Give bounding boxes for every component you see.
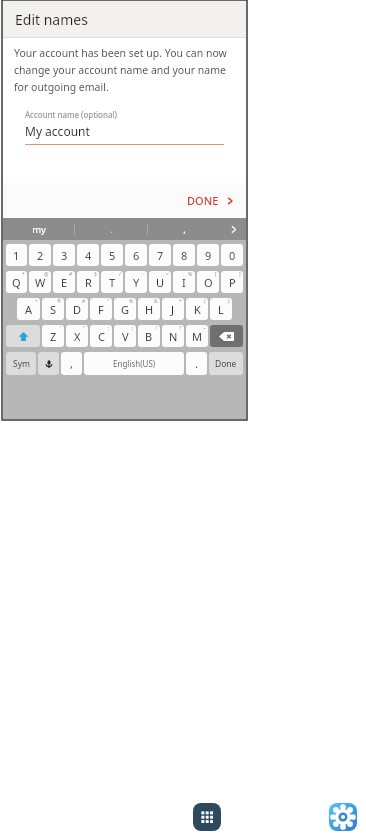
button[interactable]: ! xyxy=(138,325,160,347)
staticText: % xyxy=(129,298,134,305)
button[interactable]: 1 xyxy=(6,244,27,266)
button[interactable]: ? xyxy=(162,325,184,347)
button[interactable]: DONE xyxy=(175,187,246,214)
button[interactable]: " xyxy=(90,298,112,320)
staticText: ? xyxy=(179,325,182,332)
staticText: * xyxy=(22,271,25,278)
staticText: # xyxy=(69,271,73,278)
staticText: S xyxy=(50,302,57,317)
button[interactable]: ® xyxy=(42,298,64,320)
staticText: K xyxy=(194,302,201,317)
staticText: ! xyxy=(156,325,158,332)
staticText: , xyxy=(70,356,73,371)
button[interactable]: 8 xyxy=(173,244,195,266)
button[interactable]: 2 xyxy=(29,244,51,266)
button[interactable]: , xyxy=(61,352,82,375)
staticText: & xyxy=(154,298,158,305)
button[interactable]: my xyxy=(3,218,74,240)
staticText: - xyxy=(143,271,145,278)
staticText: B xyxy=(145,329,153,344)
button[interactable]: / xyxy=(101,271,123,293)
staticText: P xyxy=(229,275,236,290)
button[interactable]: 0 xyxy=(221,244,243,266)
staticText: My account xyxy=(25,123,90,139)
staticText: 6 xyxy=(133,248,140,263)
button[interactable]: - xyxy=(125,271,147,293)
staticText: ] xyxy=(239,271,241,278)
button[interactable]: * xyxy=(6,271,27,293)
button[interactable]: $ xyxy=(77,271,99,293)
button[interactable]: * xyxy=(162,298,184,320)
button[interactable]: [ xyxy=(197,271,219,293)
staticText: 1 xyxy=(13,248,20,263)
button[interactable]: @ xyxy=(29,271,51,293)
button[interactable]: ) xyxy=(210,298,232,320)
staticText: G xyxy=(121,302,130,317)
button[interactable]: = xyxy=(149,271,171,293)
staticText: + xyxy=(35,298,38,305)
button[interactable]: 5 xyxy=(101,244,123,266)
staticText: " xyxy=(83,325,86,332)
staticText: ; xyxy=(132,325,134,332)
button[interactable]: ( xyxy=(186,298,208,320)
button[interactable]: % xyxy=(173,271,195,293)
button[interactable]: " xyxy=(66,325,88,347)
button[interactable]: , xyxy=(148,218,220,240)
button[interactable]: % xyxy=(114,298,136,320)
staticText: Q xyxy=(12,275,21,290)
staticText: DONE xyxy=(187,193,219,208)
button[interactable]: Apps xyxy=(193,803,221,831)
staticText: N xyxy=(169,329,178,344)
staticText: my xyxy=(32,223,46,236)
staticText: T xyxy=(109,275,116,290)
staticText: W xyxy=(35,275,46,290)
button[interactable]: Backspace xyxy=(210,325,243,347)
button[interactable]: ] xyxy=(221,271,243,293)
button[interactable]: Symbols xyxy=(6,352,36,375)
staticText: . xyxy=(195,356,198,371)
staticText: ® xyxy=(57,298,62,305)
button[interactable]: ~ xyxy=(186,325,208,347)
staticText: : xyxy=(108,325,110,332)
staticText: O xyxy=(204,275,213,290)
staticText: 5 xyxy=(109,248,116,263)
staticText: R xyxy=(85,275,92,290)
button[interactable]: Shift xyxy=(6,325,40,347)
staticText: L xyxy=(218,302,224,317)
staticText: [ xyxy=(215,271,217,278)
button[interactable]: ' xyxy=(42,325,64,347)
button[interactable]: ; xyxy=(114,325,136,347)
staticText: / xyxy=(119,271,121,278)
button[interactable]: 7 xyxy=(149,244,171,266)
staticText: 0 xyxy=(229,248,236,263)
staticText: M xyxy=(192,329,202,344)
button[interactable]: : xyxy=(90,325,112,347)
button[interactable]: 4 xyxy=(77,244,99,266)
staticText: E xyxy=(61,275,68,290)
button[interactable]: More suggestions xyxy=(220,218,246,240)
button[interactable]: Voice input xyxy=(38,352,59,375)
staticText: @ xyxy=(44,271,49,278)
staticText: C xyxy=(98,329,105,344)
button[interactable]: # xyxy=(53,271,75,293)
staticText: 8 xyxy=(181,248,188,263)
button[interactable]: 6 xyxy=(125,244,147,266)
button[interactable]: 3 xyxy=(53,244,75,266)
button[interactable]: Space xyxy=(84,352,184,375)
button[interactable]: . xyxy=(186,352,207,375)
button[interactable]: & xyxy=(138,298,160,320)
button[interactable]: # xyxy=(66,298,88,320)
staticText: Account name (optional) xyxy=(25,109,117,120)
staticText: = xyxy=(166,271,169,278)
button[interactable]: Account name (optional) xyxy=(25,109,224,145)
button[interactable]: Done xyxy=(209,352,243,375)
staticText: Sym xyxy=(13,358,30,370)
staticText: I xyxy=(182,275,186,290)
staticText: A xyxy=(25,302,33,317)
button[interactable]: 9 xyxy=(197,244,219,266)
button[interactable]: Settings xyxy=(329,803,357,831)
staticText: U xyxy=(156,275,165,290)
button[interactable]: + xyxy=(17,298,40,320)
staticText: Edit names xyxy=(15,10,88,29)
